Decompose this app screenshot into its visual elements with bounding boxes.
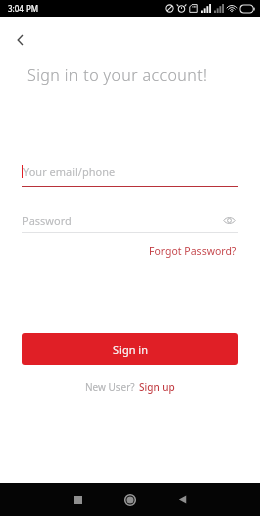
staticText: Sign in to your account!: [27, 64, 208, 86]
button[interactable]: Forgot Password?: [149, 242, 260, 260]
button[interactable]: Sign in: [22, 333, 238, 365]
button[interactable]: Show password: [220, 211, 238, 229]
staticText: Sign in: [113, 342, 148, 357]
button[interactable]: Your email/phone: [22, 164, 238, 187]
button[interactable]: Recents: [61, 483, 95, 516]
staticText: Your email/phone: [23, 164, 116, 179]
staticText: Password: [22, 213, 220, 228]
staticText: New User?: [85, 380, 138, 394]
button[interactable]: Sign up: [138, 378, 176, 396]
button[interactable]: Password: [22, 211, 238, 233]
staticText: 3:04 PM: [8, 3, 39, 14]
button[interactable]: Back: [6, 25, 36, 55]
button[interactable]: Back: [165, 483, 199, 516]
button[interactable]: Home: [113, 483, 147, 516]
